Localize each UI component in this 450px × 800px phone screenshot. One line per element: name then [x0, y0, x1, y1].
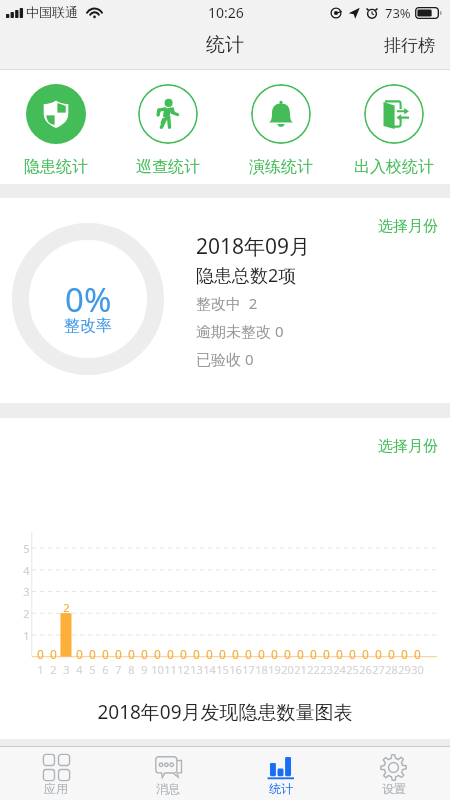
staticText: 0	[284, 646, 291, 662]
staticText: 设置	[382, 781, 406, 796]
staticText: 0	[362, 646, 369, 662]
staticText: 30	[411, 662, 424, 677]
staticText: 0	[375, 646, 382, 662]
staticText: 25	[346, 662, 359, 677]
staticText: 11	[164, 662, 177, 677]
staticText: 6	[102, 662, 109, 677]
staticText: 0	[115, 646, 122, 662]
staticText: 0	[193, 646, 200, 662]
staticText: 0	[271, 646, 278, 662]
staticText: 26	[359, 662, 372, 677]
staticText: 0	[388, 646, 395, 662]
staticText: 29	[398, 662, 411, 677]
staticText: 0	[349, 646, 356, 662]
staticText: 0%	[65, 277, 112, 322]
staticText: 0	[89, 646, 96, 662]
button[interactable]: 选择月份	[362, 418, 450, 466]
staticText: 整改中 2	[196, 293, 258, 313]
staticText: 逾期未整改 0	[196, 321, 284, 341]
button[interactable]: Statistics	[224, 747, 337, 800]
staticText: 22	[307, 662, 320, 677]
staticText: 4	[23, 563, 30, 578]
staticText: 0	[219, 646, 226, 662]
button[interactable]: 演练统计	[224, 70, 337, 184]
staticText: 0	[245, 646, 252, 662]
staticText: 排行榜	[384, 35, 435, 56]
staticText: 0	[297, 646, 304, 662]
staticText: 隐患总数2项	[196, 263, 297, 288]
staticText: 隐患统计	[24, 157, 88, 177]
staticText: 17	[242, 662, 255, 677]
staticText: 2	[63, 600, 70, 615]
staticText: 15	[216, 662, 229, 677]
staticText: 23	[320, 662, 333, 677]
button[interactable]: 巡查统计	[112, 70, 224, 184]
button[interactable]: Messages	[112, 747, 224, 800]
staticText: 1	[37, 662, 44, 677]
button[interactable]: 排行榜	[369, 25, 450, 66]
staticText: 16	[229, 662, 242, 677]
button[interactable]: Apps	[0, 747, 112, 800]
staticText: 0	[180, 646, 187, 662]
staticText: 20	[281, 662, 294, 677]
staticText: 24	[333, 662, 346, 677]
staticText: 9	[141, 662, 148, 677]
staticText: 27	[372, 662, 385, 677]
staticText: 2018年09月发现隐患数量图表	[0, 699, 450, 725]
staticText: 0	[141, 646, 148, 662]
staticText: 28	[385, 662, 398, 677]
staticText: 选择月份	[378, 437, 438, 456]
staticText: 18	[255, 662, 268, 677]
staticText: 0	[336, 646, 343, 662]
staticText: 3	[23, 584, 30, 599]
staticText: 0	[37, 646, 44, 662]
staticText: 演练统计	[249, 157, 313, 177]
staticText: 消息	[156, 781, 180, 796]
staticText: 2	[50, 662, 57, 677]
staticText: 0	[76, 646, 83, 662]
staticText: 整改率	[64, 316, 112, 336]
staticText: 0	[167, 646, 174, 662]
staticText: 12	[177, 662, 190, 677]
button[interactable]: 出入校统计	[337, 70, 450, 184]
staticText: 10:26	[208, 3, 244, 22]
staticText: 5	[23, 541, 30, 556]
staticText: 0	[154, 646, 161, 662]
staticText: 统计	[206, 33, 244, 57]
staticText: 0	[323, 646, 330, 662]
staticText: 2018年09月	[196, 232, 311, 261]
staticText: 13	[190, 662, 203, 677]
staticText: 0	[258, 646, 265, 662]
button[interactable]: Settings	[337, 747, 450, 800]
staticText: 0	[310, 646, 317, 662]
staticText: 8	[128, 662, 135, 677]
staticText: 0	[50, 646, 57, 662]
staticText: 中国联通	[26, 4, 78, 20]
staticText: 21	[294, 662, 307, 677]
staticText: 巡查统计	[136, 157, 200, 177]
staticText: 0	[102, 646, 109, 662]
staticText: 0	[206, 646, 213, 662]
other: Location service	[330, 7, 342, 19]
staticText: 7	[115, 662, 122, 677]
staticText: 选择月份	[378, 217, 438, 236]
staticText: 4	[76, 662, 83, 677]
staticText: 5	[89, 662, 96, 677]
staticText: 10	[151, 662, 164, 677]
staticText: 3	[63, 662, 70, 677]
staticText: 已验收 0	[196, 349, 254, 369]
staticText: 应用	[44, 781, 68, 796]
staticText: 19	[268, 662, 281, 677]
staticText: 0	[232, 646, 239, 662]
staticText: 2	[23, 606, 30, 621]
staticText: 出入校统计	[354, 157, 434, 177]
staticText: 73%	[385, 4, 411, 22]
staticText: 14	[203, 662, 216, 677]
staticText: 0	[414, 646, 421, 662]
button[interactable]: 选择月份	[362, 198, 450, 246]
staticText: 0	[128, 646, 135, 662]
staticText: 1	[23, 628, 30, 643]
button[interactable]: 隐患统计	[0, 70, 112, 184]
staticText: 统计	[269, 781, 293, 796]
staticText: 0	[401, 646, 408, 662]
